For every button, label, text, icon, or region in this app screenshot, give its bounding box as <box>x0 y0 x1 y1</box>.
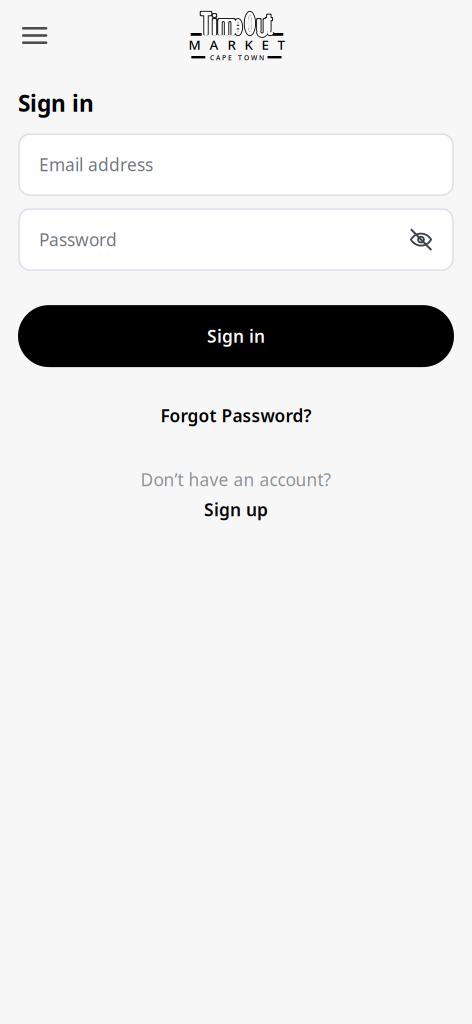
staticText: Forgot Password? <box>160 404 311 427</box>
staticText: C A P E T O W N <box>210 53 264 62</box>
staticText: Sign in <box>18 88 94 118</box>
button[interactable]: Email address <box>0 134 472 195</box>
staticText: Sign up <box>204 498 268 521</box>
staticText: Don’t have an account? <box>140 468 331 491</box>
button[interactable]: Sign in <box>0 305 472 367</box>
button[interactable]: Menu <box>0 17 59 54</box>
staticText: Email address <box>39 153 153 176</box>
button[interactable]: Sign up <box>0 498 472 521</box>
button[interactable]: Forgot Password? <box>0 404 472 427</box>
staticText: Sign in <box>207 325 265 348</box>
staticText: M A R K E T <box>188 36 284 53</box>
staticText: Password <box>39 228 117 251</box>
button[interactable]: Password <box>0 209 472 270</box>
